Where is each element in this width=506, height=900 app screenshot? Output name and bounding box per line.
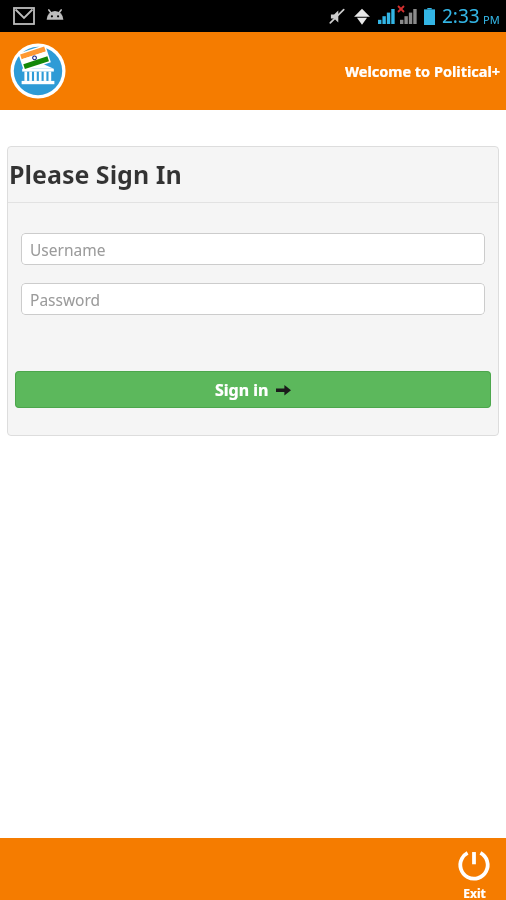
button[interactable]: Username (21, 233, 485, 265)
button[interactable]: App logo (6, 39, 70, 103)
staticText: Sign in (215, 379, 269, 401)
staticText: Username (30, 239, 106, 260)
staticText: Welcome to Political+ (345, 61, 501, 81)
staticText: 2:33 (442, 3, 480, 29)
button[interactable]: Exit (456, 847, 492, 900)
staticText: Exit (463, 885, 486, 900)
button[interactable]: Password (21, 283, 485, 315)
staticText: Please Sign In (9, 157, 182, 191)
button[interactable]: Sign in (15, 371, 491, 408)
staticText: PM (483, 12, 500, 27)
staticText: Password (30, 289, 101, 310)
